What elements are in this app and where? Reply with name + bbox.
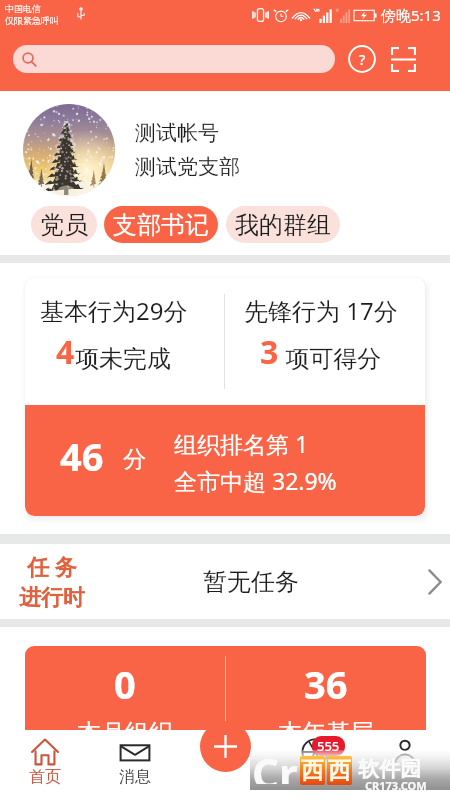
staticText: 本年基层 <box>278 718 374 748</box>
staticText: ? <box>359 50 366 69</box>
staticText: 首页 <box>29 767 61 787</box>
staticText: 西 <box>301 756 324 785</box>
staticText: 先锋行为 17分 <box>244 294 398 327</box>
staticText: 项可得分 <box>279 341 382 374</box>
staticText: 555 <box>317 737 340 755</box>
button[interactable]: 党员 <box>31 206 97 243</box>
staticText: 46 <box>60 430 104 482</box>
button[interactable]: 首页 <box>0 730 90 800</box>
button[interactable]: 支部书记 <box>104 206 218 243</box>
button[interactable]: 46 <box>25 405 425 516</box>
staticText: 暂无任务 <box>203 567 299 597</box>
staticText: 傍晚5:13 <box>381 5 441 25</box>
staticText: 基本行为29分 <box>40 294 188 327</box>
button[interactable]: 先锋行为 17分 <box>225 278 425 405</box>
button[interactable]: 0 <box>25 646 225 766</box>
staticText: 分 <box>123 445 146 474</box>
staticText: 我的 <box>389 767 421 787</box>
button[interactable]: 消息 <box>90 730 180 800</box>
button[interactable] <box>23 104 115 196</box>
staticText: 西 <box>328 756 351 785</box>
staticText: Cr <box>252 744 298 784</box>
staticText: 党员 <box>40 210 88 240</box>
staticText: 4 <box>56 330 75 374</box>
staticText: 中国电信 <box>5 3 41 14</box>
staticText: 项未完成 <box>75 344 171 374</box>
staticText: 仅限紧急呼叫 <box>5 15 59 26</box>
staticText: 我的群组 <box>235 210 331 240</box>
button[interactable]: 党建 <box>270 730 360 800</box>
button[interactable]: 36 <box>226 646 426 766</box>
button[interactable]: Scan <box>387 43 419 75</box>
staticText: 测试帐号 <box>135 120 219 146</box>
staticText: 0 <box>114 658 136 710</box>
button[interactable]: 我的 <box>360 730 450 800</box>
staticText: 测试党支部 <box>135 154 240 180</box>
button[interactable]: Add <box>200 721 251 772</box>
staticText: 消息 <box>119 767 151 787</box>
button[interactable]: Help <box>346 43 378 75</box>
staticText: 进行时 <box>19 584 85 612</box>
button[interactable]: 基本行为29分 <box>25 278 224 405</box>
staticText: 软件园 <box>358 756 421 782</box>
button[interactable] <box>13 45 335 73</box>
staticText: 3 <box>260 330 279 374</box>
staticText: 全市中超 32.9% <box>174 465 337 496</box>
staticText: CR173.COM <box>365 778 427 793</box>
staticText: 组织排名第 1 <box>174 428 309 459</box>
staticText: 本月组织 <box>77 718 173 748</box>
staticText: 党建 <box>299 767 331 787</box>
staticText: 任 务 <box>27 551 77 581</box>
button[interactable]: 任 务 <box>0 544 450 619</box>
staticText: 36 <box>304 658 348 710</box>
button[interactable]: 我的群组 <box>226 206 340 243</box>
staticText: 支部书记 <box>113 210 209 240</box>
